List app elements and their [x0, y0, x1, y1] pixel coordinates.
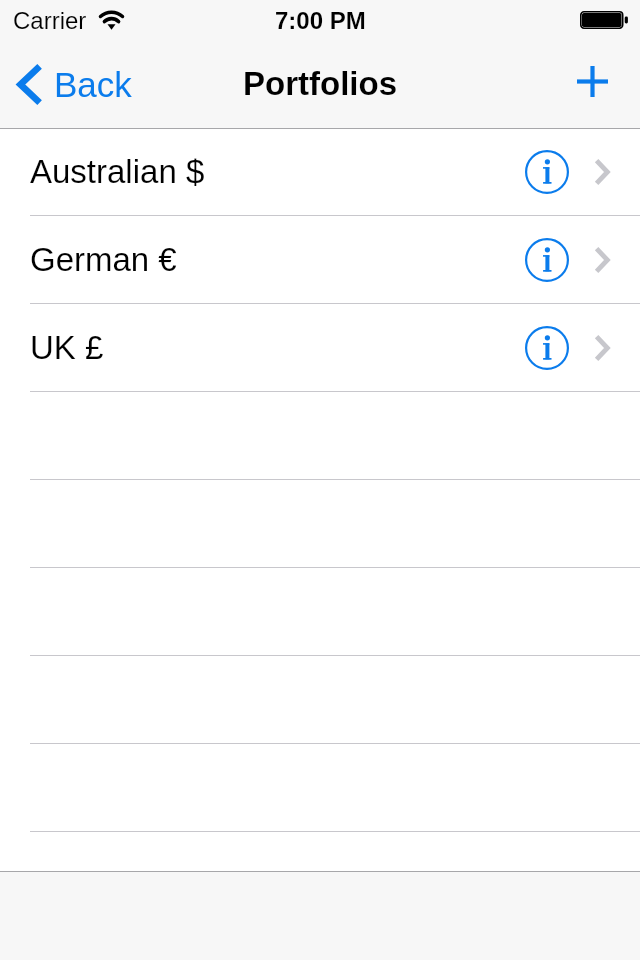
button[interactable]: UK £: [0, 304, 640, 392]
button[interactable]: Info: [525, 150, 569, 194]
staticText: Portfolios: [243, 65, 397, 102]
button[interactable]: German €: [0, 216, 640, 304]
button[interactable]: Back: [0, 54, 146, 115]
staticText: Australian $: [30, 153, 205, 190]
staticText: Back: [54, 65, 132, 104]
button[interactable]: Info: [525, 238, 569, 282]
button[interactable]: Australian $: [0, 128, 640, 216]
button[interactable]: Add: [565, 54, 620, 109]
staticText: German €: [30, 241, 177, 278]
button[interactable]: Info: [525, 326, 569, 370]
staticText: Carrier: [13, 7, 87, 34]
staticText: UK £: [30, 329, 104, 366]
staticText: 7:00 PM: [275, 7, 366, 34]
